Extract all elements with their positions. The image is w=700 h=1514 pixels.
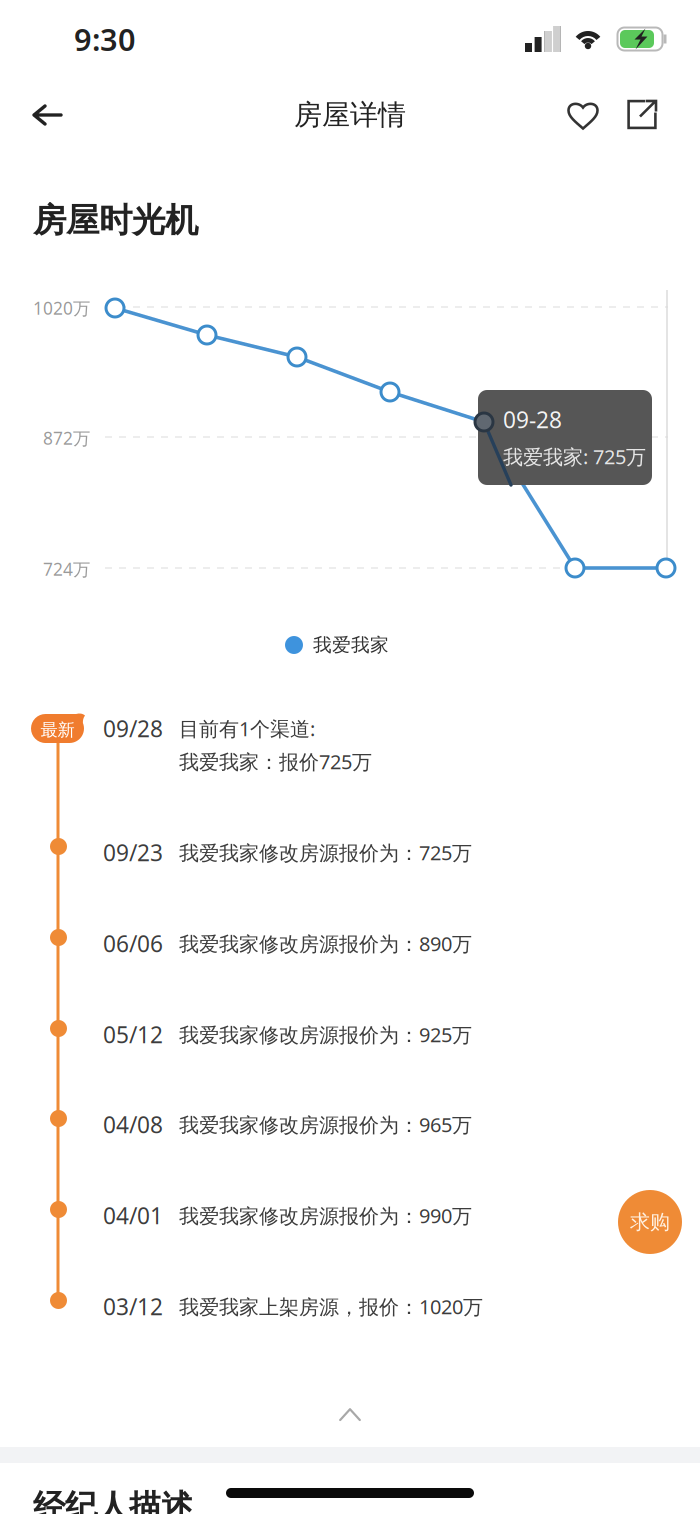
staticText: 04/08 <box>103 1109 163 1139</box>
button[interactable]: 05/12 <box>103 1018 683 1051</box>
staticText: 9:30 <box>74 19 136 59</box>
button[interactable]: 求购 <box>618 1190 682 1254</box>
staticText: 目前有1个渠道: <box>179 715 315 742</box>
staticText: 09/23 <box>103 837 163 867</box>
staticText: 我爱我家 <box>313 633 389 656</box>
staticText: 我爱我家修改房源报价为：990万 <box>179 1202 472 1229</box>
staticText: 872万 <box>43 426 90 449</box>
staticText: 我爱我家修改房源报价为：890万 <box>179 930 472 957</box>
staticText: 1020万 <box>33 296 90 319</box>
staticText: 求购 <box>630 1210 670 1234</box>
staticText: 04/01 <box>103 1200 163 1230</box>
button[interactable]: Collapse <box>319 1388 381 1441</box>
staticText: 09/28 <box>103 713 163 743</box>
button[interactable]: 06/06 <box>103 927 683 960</box>
staticText: 房屋时光机 <box>33 200 198 241</box>
staticText: 我爱我家修改房源报价为：965万 <box>179 1111 472 1138</box>
button[interactable]: 09/28 <box>103 712 683 778</box>
button[interactable]: 03/12 <box>103 1290 683 1323</box>
button[interactable]: 04/01 <box>103 1199 683 1232</box>
button[interactable]: Share <box>612 86 670 143</box>
staticText: 09-28 <box>503 404 562 434</box>
staticText: 我爱我家：报价725万 <box>179 748 372 775</box>
button[interactable]: Back <box>22 87 80 143</box>
staticText: 06/06 <box>103 928 163 958</box>
button[interactable]: Favorite <box>554 86 612 143</box>
staticText: 724万 <box>43 557 90 580</box>
button[interactable]: 09/23 <box>103 836 683 869</box>
button[interactable]: 04/08 <box>103 1108 683 1141</box>
staticText: 05/12 <box>103 1019 163 1049</box>
staticText: 我爱我家修改房源报价为：925万 <box>179 1021 472 1048</box>
staticText: 03/12 <box>103 1291 163 1321</box>
staticText: 房屋详情 <box>294 98 406 132</box>
staticText: 最新 <box>40 719 74 741</box>
staticText: 我爱我家上架房源，报价：1020万 <box>179 1293 483 1320</box>
staticText: 经纪人描述 <box>33 1487 193 1514</box>
staticText: 我爱我家修改房源报价为：725万 <box>179 839 472 866</box>
staticText: 我爱我家: 725万 <box>503 443 646 470</box>
